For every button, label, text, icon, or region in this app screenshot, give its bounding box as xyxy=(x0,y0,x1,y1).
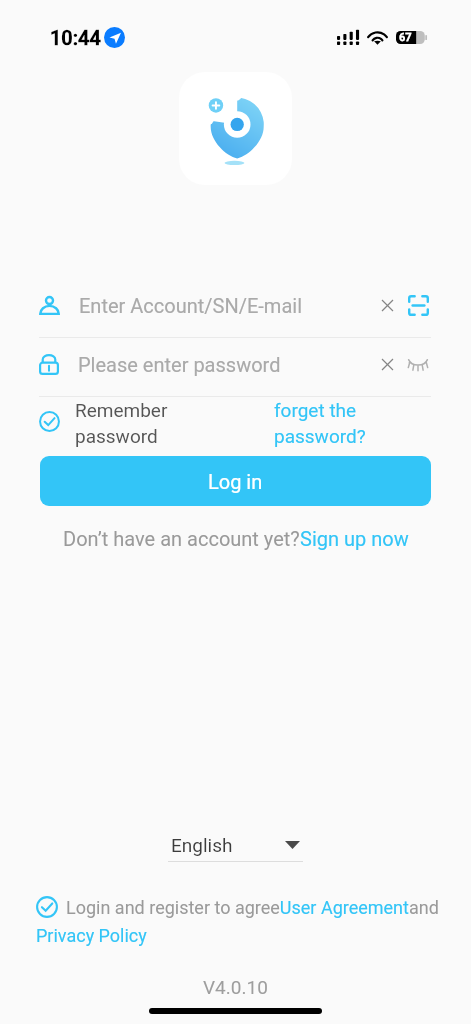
button[interactable]: forget the password? xyxy=(274,399,431,447)
button[interactable]: Log in xyxy=(40,456,431,506)
button[interactable]: Agree to terms xyxy=(36,896,58,918)
button[interactable]: English xyxy=(168,834,303,856)
staticText: Please enter password xyxy=(78,353,281,376)
staticText: Don’t have an account yet? xyxy=(63,527,300,550)
button[interactable]: Clear xyxy=(374,351,400,377)
staticText: 10:44 xyxy=(50,26,101,49)
staticText: 67 xyxy=(399,31,412,44)
staticText: Remember password xyxy=(75,399,168,447)
button[interactable]: Scan QR code xyxy=(405,292,431,318)
staticText: English xyxy=(171,834,233,856)
button[interactable]: Clear xyxy=(374,292,400,318)
button[interactable]: Privacy Policy xyxy=(36,925,147,946)
button[interactable]: Sign up now xyxy=(300,527,409,550)
button[interactable]: Show password xyxy=(405,351,431,377)
staticText: Enter Account/SN/E-mail xyxy=(79,294,302,317)
staticText: V4.0.10 xyxy=(203,976,268,998)
button[interactable]: Remember password xyxy=(39,399,168,447)
button[interactable]: Login and register to agreeUser Agreemen… xyxy=(66,897,439,918)
staticText: Log in xyxy=(208,470,263,493)
